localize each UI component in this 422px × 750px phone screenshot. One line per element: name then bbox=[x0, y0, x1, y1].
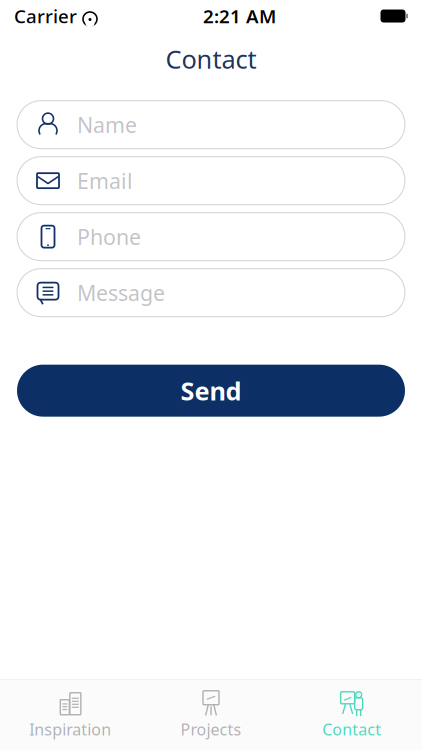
staticText: Carrier bbox=[14, 4, 77, 28]
staticText: Inspiration bbox=[29, 719, 111, 740]
button[interactable]: Email bbox=[17, 157, 405, 205]
staticText: Contact bbox=[165, 42, 256, 76]
staticText: Projects bbox=[180, 719, 241, 740]
button[interactable]: Phone bbox=[17, 213, 405, 261]
staticText: 2:21 AM bbox=[203, 4, 276, 28]
staticText: Name bbox=[77, 110, 137, 139]
button[interactable]: Name bbox=[17, 101, 405, 149]
button[interactable]: Message bbox=[17, 269, 405, 317]
button[interactable]: Projects bbox=[141, 684, 281, 746]
button[interactable]: Send bbox=[17, 365, 405, 417]
button[interactable]: Inspiration bbox=[0, 684, 141, 746]
staticText: Email bbox=[77, 166, 133, 195]
button[interactable]: Contact bbox=[281, 684, 422, 746]
staticText: Contact bbox=[322, 719, 381, 740]
staticText: Send bbox=[180, 374, 241, 407]
staticText: Phone bbox=[77, 222, 141, 251]
staticText: Message bbox=[77, 278, 165, 307]
